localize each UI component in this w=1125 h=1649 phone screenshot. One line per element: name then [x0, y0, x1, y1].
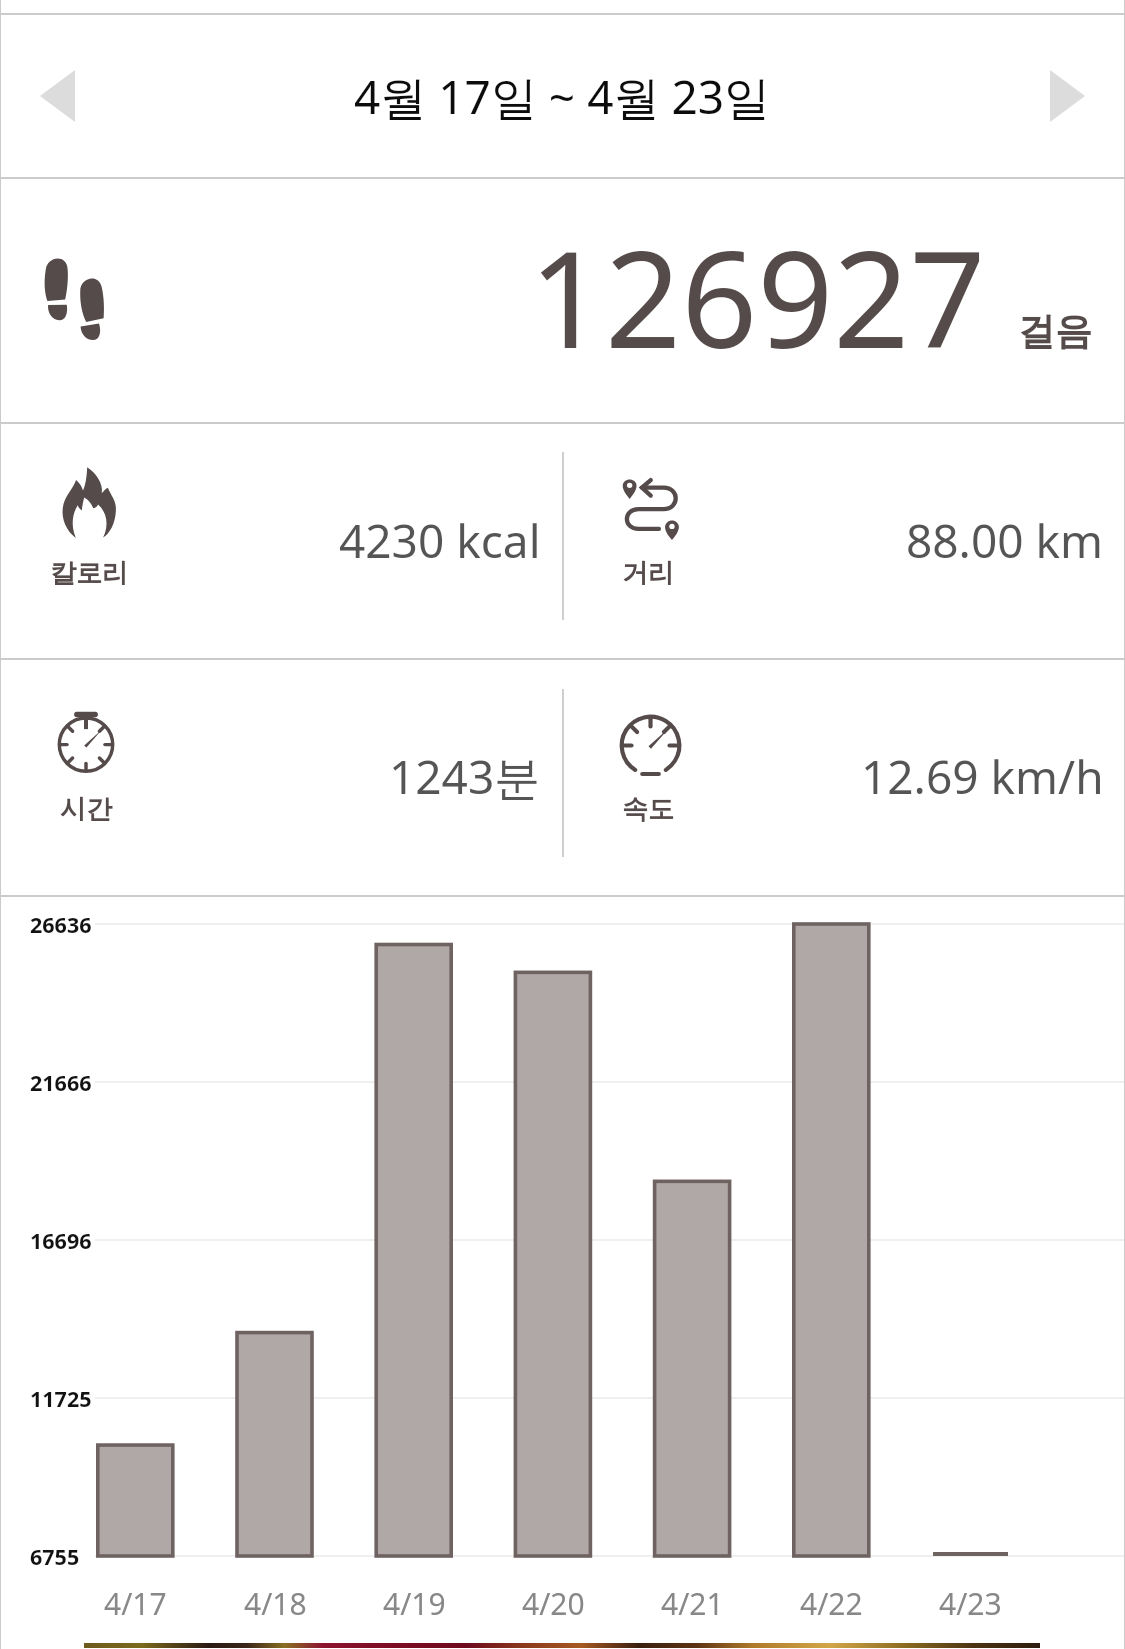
- staticText: 88.00 km: [906, 509, 1104, 572]
- button[interactable]: 속도: [562, 660, 1125, 895]
- staticText: 11725: [30, 1384, 92, 1413]
- staticText: 속도: [622, 793, 674, 826]
- staticText: 4월 17일 ~ 4월 23일: [354, 65, 771, 128]
- staticText: 4/21: [661, 1583, 724, 1624]
- button[interactable]: 4/23: [910, 1575, 1030, 1631]
- button[interactable]: 4/20: [493, 1575, 613, 1631]
- button[interactable]: 4/19: [354, 1575, 474, 1631]
- button[interactable]: 4/17: [75, 1575, 195, 1631]
- button[interactable]: Next week: [1010, 15, 1125, 177]
- staticText: 4/23: [939, 1583, 1002, 1624]
- staticText: 4/22: [800, 1583, 863, 1624]
- staticText: 4/19: [383, 1583, 446, 1624]
- button[interactable]: 시간: [0, 660, 562, 895]
- button[interactable]: 칼로리: [0, 424, 562, 658]
- staticText: 4/20: [522, 1583, 585, 1624]
- staticText: 21666: [30, 1068, 92, 1097]
- staticText: 걸음: [1018, 308, 1092, 355]
- staticText: 16696: [30, 1226, 92, 1255]
- staticText: 26636: [30, 910, 92, 939]
- button[interactable]: 4/22: [771, 1575, 891, 1631]
- button[interactable]: Previous week: [0, 15, 115, 177]
- staticText: 1243분: [389, 745, 541, 808]
- staticText: 6755: [30, 1542, 80, 1571]
- staticText: 4/17: [104, 1583, 167, 1624]
- button[interactable]: 4/18: [215, 1575, 335, 1631]
- staticText: 4230 kcal: [339, 509, 541, 572]
- button[interactable]: 거리: [562, 424, 1125, 658]
- staticText: 4/18: [244, 1583, 307, 1624]
- staticText: 시간: [60, 793, 112, 826]
- staticText: 126927: [529, 206, 986, 387]
- staticText: 거리: [622, 557, 674, 590]
- button[interactable]: 4/21: [632, 1575, 752, 1631]
- staticText: 칼로리: [50, 557, 128, 590]
- button[interactable]: 126927: [0, 179, 1125, 422]
- staticText: 12.69 km/h: [861, 745, 1104, 808]
